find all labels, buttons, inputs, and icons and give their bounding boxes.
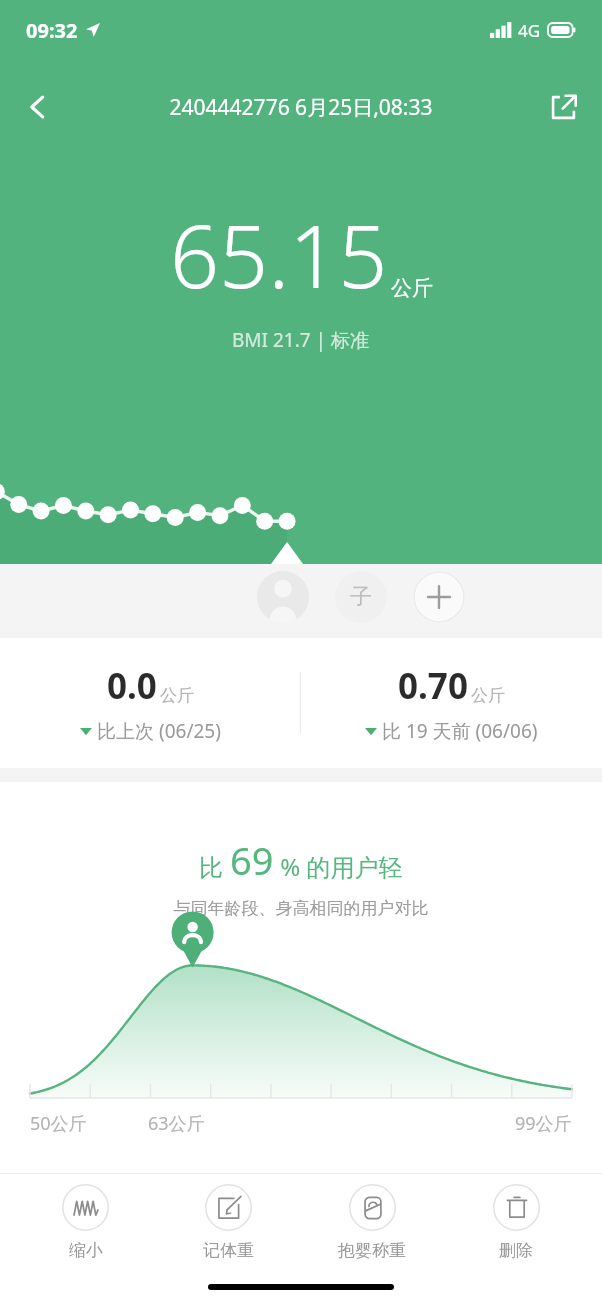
button[interactable]: User profile	[257, 571, 309, 623]
staticText: 比上次 (06/25)	[97, 718, 221, 744]
staticText: 删除	[499, 1240, 533, 1261]
staticText: 09:32	[26, 17, 78, 44]
staticText: 与同年龄段、身高相同的用户对比	[0, 898, 602, 919]
staticText: 63公斤	[148, 1111, 205, 1136]
staticText: % 的用户轻	[274, 850, 403, 883]
staticText: 抱婴称重	[338, 1240, 406, 1261]
staticText: 比	[199, 850, 230, 883]
button[interactable]: 0.0	[0, 638, 300, 768]
button[interactable]: 删除	[444, 1174, 588, 1270]
staticText: 比 19 天前 (06/06)	[382, 718, 538, 744]
button[interactable]: Share	[526, 76, 602, 138]
staticText: 2404442776 6月25日,08:33	[76, 93, 526, 122]
staticText: 公斤	[391, 275, 433, 301]
staticText: 0.70	[398, 662, 468, 710]
button[interactable]: 抱婴称重	[300, 1174, 444, 1270]
staticText: 公斤	[160, 685, 194, 706]
staticText: 缩小	[69, 1240, 103, 1261]
staticText: 公斤	[471, 685, 505, 706]
staticText: 4G	[518, 19, 541, 42]
button[interactable]: Back	[0, 76, 76, 138]
staticText: BMI 21.7 | 标准	[232, 327, 370, 353]
staticText: 记体重	[203, 1240, 254, 1261]
button[interactable]: 子	[335, 571, 387, 623]
staticText: 50公斤	[30, 1111, 87, 1136]
button[interactable]: Add member	[413, 571, 465, 623]
button[interactable]: 缩小	[14, 1174, 157, 1270]
staticText: 0.0	[107, 662, 157, 710]
staticText: 99公斤	[515, 1111, 572, 1136]
button[interactable]: 记体重	[157, 1174, 300, 1270]
staticText: 69	[230, 834, 274, 886]
staticText: 子	[350, 583, 372, 611]
button[interactable]: 0.70	[301, 638, 602, 768]
staticText: 65.15	[170, 196, 388, 313]
